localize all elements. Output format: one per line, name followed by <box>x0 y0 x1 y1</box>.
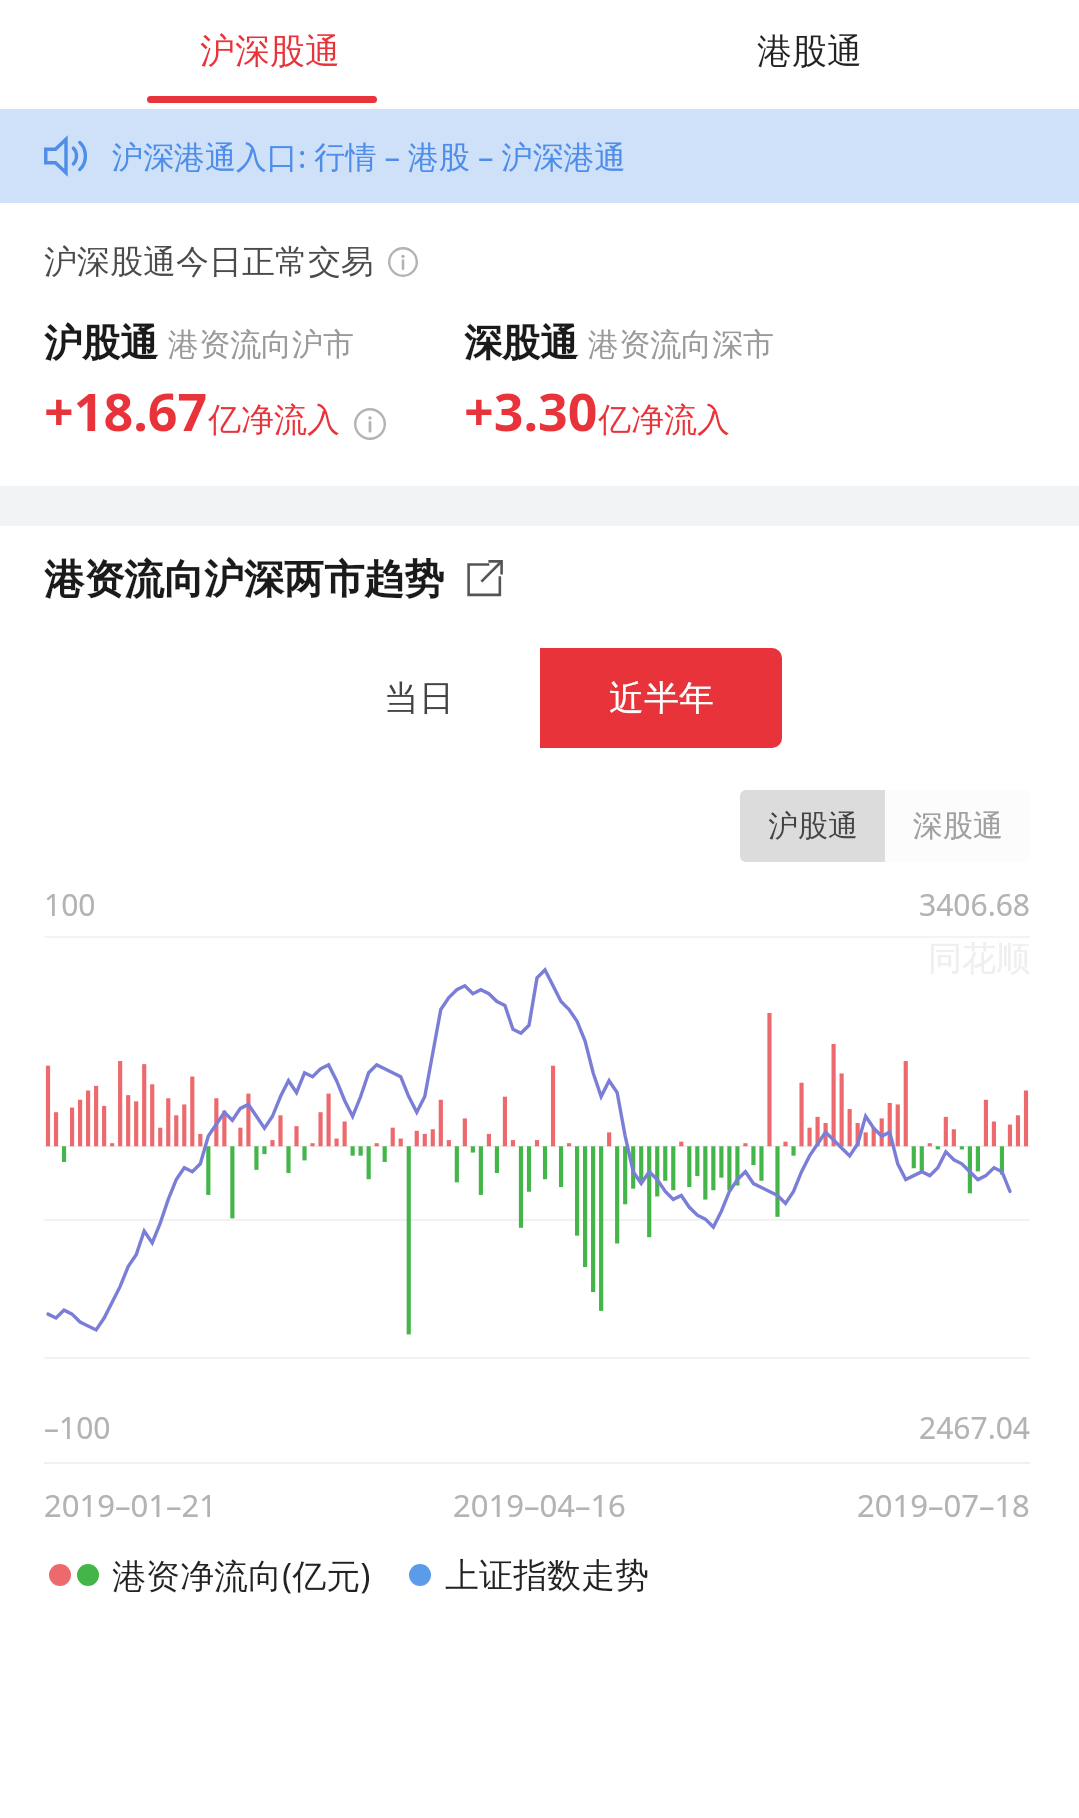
staticText: 沪深股通 <box>200 29 340 73</box>
staticText: 2019–01–21 <box>44 1484 217 1526</box>
staticText: 港股通 <box>757 29 862 73</box>
staticText: 沪股通 <box>44 319 158 367</box>
button[interactable]: 近半年 <box>540 648 782 748</box>
staticText: 深股通 <box>464 319 578 367</box>
staticText: 沪股通 <box>768 807 858 845</box>
staticText: 港资流向深市 <box>588 325 774 364</box>
button[interactable]: 分享 <box>462 557 506 601</box>
staticText: 同花顺 <box>928 937 1030 980</box>
staticText: 港资净流向(亿元) <box>112 1552 371 1598</box>
staticText: 2019–04–16 <box>453 1484 626 1526</box>
staticText: –100 <box>44 1407 111 1448</box>
button[interactable]: 深股通 <box>885 790 1030 862</box>
staticText: 港资流向沪市 <box>168 325 354 364</box>
button[interactable]: 沪深股通 <box>0 0 539 101</box>
staticText: 深股通 <box>913 807 1003 845</box>
button[interactable]: 说明 <box>388 247 418 277</box>
staticText: 近半年 <box>609 676 714 720</box>
staticText: 上证指数走势 <box>445 1554 649 1597</box>
staticText: 沪深港通入口: 行情 – 港股 – 沪深港通 <box>112 135 626 177</box>
staticText: 2467.04 <box>919 1407 1030 1448</box>
button[interactable]: 当日 <box>298 648 540 748</box>
button[interactable]: 沪深港通入口: 行情 – 港股 – 沪深港通 <box>0 109 1079 203</box>
button[interactable]: 净流入说明 <box>354 408 386 440</box>
staticText: 2019–07–18 <box>857 1484 1030 1526</box>
button[interactable]: 港股通 <box>539 0 1079 101</box>
staticText: +18.67 <box>44 375 208 446</box>
staticText: 亿净流入 <box>208 399 340 441</box>
staticText: 3406.68 <box>919 884 1030 925</box>
staticText: 亿净流入 <box>598 399 730 441</box>
button[interactable]: 深股通 <box>464 319 774 446</box>
staticText: 沪深股通今日正常交易 <box>44 241 374 283</box>
button[interactable]: 沪股通 <box>740 790 885 862</box>
staticText: 当日 <box>384 676 454 720</box>
staticText: 港资流向沪深两市趋势 <box>44 554 444 604</box>
button[interactable]: 沪股通 <box>44 319 464 446</box>
staticText: +3.30 <box>464 375 598 446</box>
staticText: 100 <box>44 884 96 925</box>
